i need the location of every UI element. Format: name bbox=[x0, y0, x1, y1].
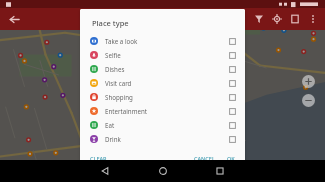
staticText: CLEAR bbox=[90, 155, 107, 162]
button[interactable]: Entertainment bbox=[80, 104, 245, 118]
button[interactable]: Shopping bbox=[80, 90, 245, 104]
button[interactable]: Visit card bbox=[80, 76, 245, 90]
button[interactable]: More options bbox=[304, 10, 322, 28]
button[interactable]: Layers bbox=[232, 10, 250, 28]
button[interactable]: CLEAR bbox=[86, 153, 111, 164]
button[interactable]: Zoom in bbox=[302, 75, 315, 88]
staticText: Take a look bbox=[105, 37, 229, 45]
staticText: Drink bbox=[105, 135, 229, 143]
staticText: CANCEL bbox=[194, 155, 215, 162]
staticText: Entertainment bbox=[105, 107, 229, 115]
button[interactable]: Recents bbox=[211, 162, 229, 180]
staticText: Dishes bbox=[105, 65, 229, 73]
button[interactable]: Eat bbox=[80, 118, 245, 132]
button[interactable]: Drink bbox=[80, 132, 245, 146]
button[interactable]: CANCEL bbox=[190, 153, 219, 164]
button[interactable]: Filter bbox=[250, 10, 268, 28]
button[interactable]: Take a look bbox=[80, 34, 245, 48]
button[interactable]: My location bbox=[268, 10, 286, 28]
button[interactable]: Back bbox=[96, 162, 114, 180]
staticText: Selfie bbox=[105, 51, 229, 59]
staticText: Place type bbox=[92, 18, 129, 28]
button[interactable]: Saved bbox=[286, 10, 304, 28]
button[interactable]: OK bbox=[223, 153, 239, 164]
staticText: Eat bbox=[105, 121, 229, 129]
staticText: Visit card bbox=[105, 79, 229, 87]
button[interactable]: Selfie bbox=[80, 48, 245, 62]
button[interactable]: Dishes bbox=[80, 62, 245, 76]
button[interactable]: Home bbox=[154, 162, 172, 180]
button[interactable]: Zoom out bbox=[302, 94, 315, 107]
button[interactable]: Back bbox=[6, 11, 22, 27]
staticText: OK bbox=[227, 155, 235, 162]
staticText: Shopping bbox=[105, 93, 229, 101]
